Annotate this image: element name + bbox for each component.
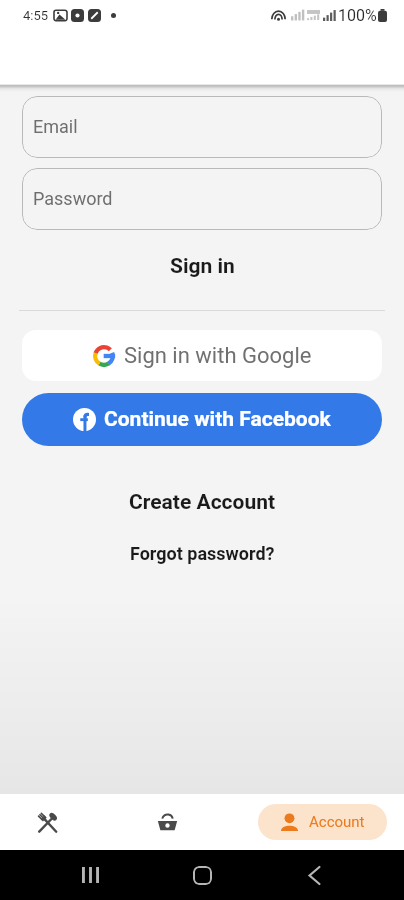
staticText: Email [33, 116, 78, 137]
staticText: Password [33, 188, 113, 209]
staticText: 100% [338, 6, 377, 25]
button[interactable]: Recents [0, 850, 180, 900]
staticText: Forgot password? [130, 543, 275, 564]
button[interactable]: Forgot password? [0, 538, 404, 568]
button[interactable]: Sign in [0, 244, 404, 288]
button[interactable]: Basket [94, 794, 240, 850]
staticText: Create Account [129, 490, 276, 515]
button[interactable]: Back [225, 850, 404, 900]
button[interactable]: Password [22, 168, 382, 230]
button[interactable]: Email [22, 96, 382, 158]
staticText: Account [309, 813, 365, 831]
staticText: Sign in with Google [124, 343, 312, 369]
staticText: Continue with Facebook [104, 407, 331, 432]
staticText: Sign in [170, 254, 235, 279]
button[interactable]: Create Account [0, 483, 404, 521]
staticText: 4:55 [23, 8, 49, 23]
button[interactable]: Restaurant [0, 794, 94, 850]
button[interactable]: Continue with Facebook [22, 393, 382, 446]
button[interactable]: Account [258, 804, 387, 840]
button[interactable]: Home [180, 850, 225, 900]
button[interactable]: Sign in with Google [22, 330, 382, 381]
